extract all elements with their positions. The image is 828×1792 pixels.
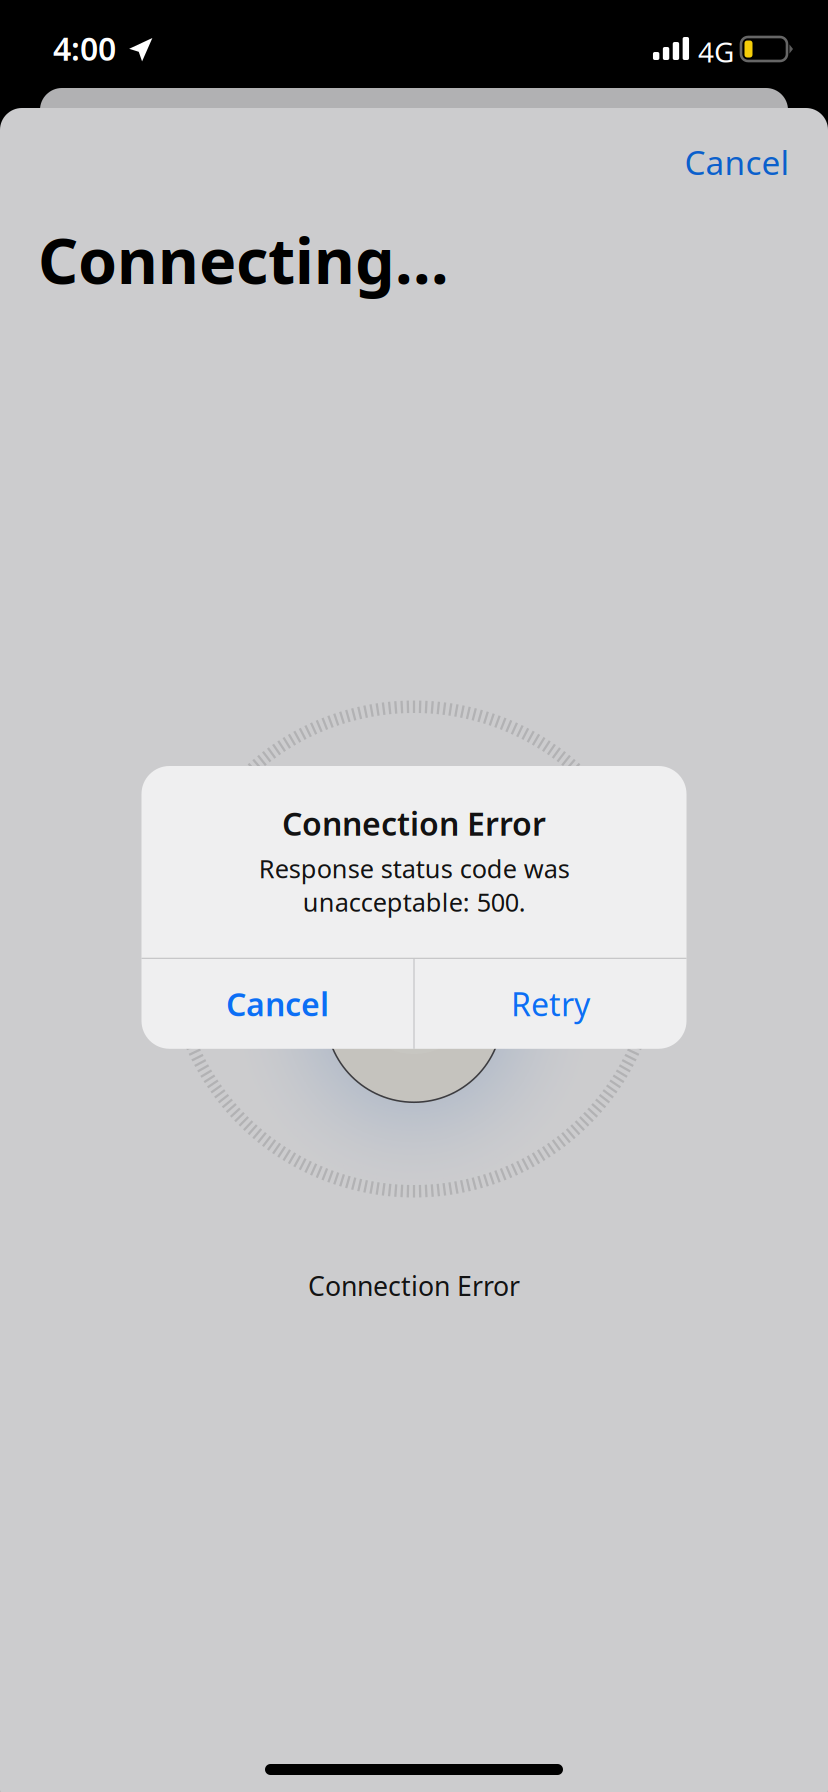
staticText: Connecting... bbox=[38, 218, 449, 301]
button[interactable]: Retry bbox=[414, 959, 686, 1049]
staticText: Response status code was unacceptable: 5… bbox=[258, 851, 569, 919]
staticText: Connection Error bbox=[308, 1268, 520, 1303]
staticText: Retry bbox=[511, 982, 590, 1025]
staticText: Connection Error bbox=[282, 802, 546, 844]
button[interactable]: Cancel bbox=[668, 118, 806, 206]
staticText: Cancel bbox=[684, 140, 789, 184]
button[interactable]: Cancel bbox=[141, 959, 413, 1049]
staticText: 4G bbox=[698, 33, 734, 70]
staticText: 4:00 bbox=[53, 27, 116, 69]
staticText: Cancel bbox=[226, 982, 329, 1025]
